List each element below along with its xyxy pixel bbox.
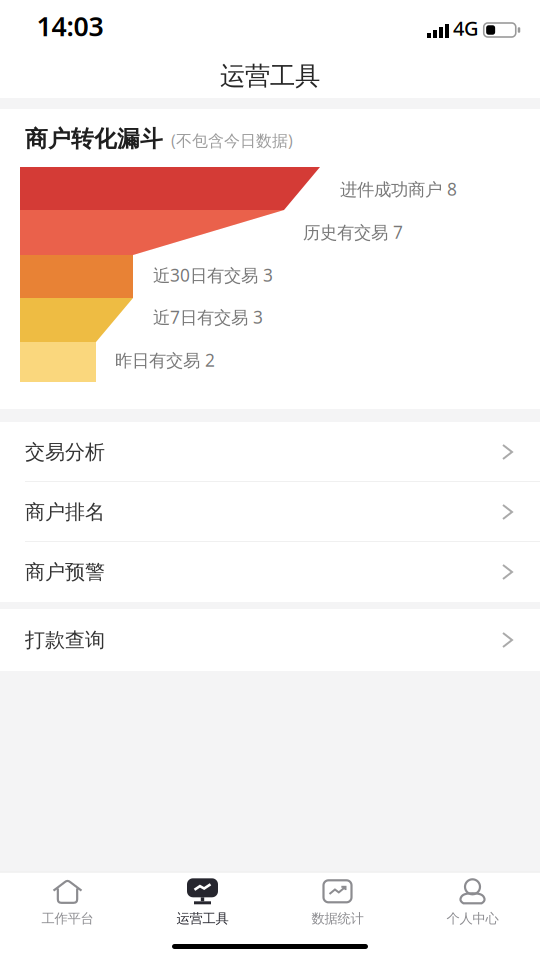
staticText: 近7日有交易 3 xyxy=(153,305,263,328)
button[interactable]: 运营工具 xyxy=(135,872,270,932)
staticText: 数据统计 xyxy=(311,910,363,927)
staticText: 14:03 xyxy=(36,8,103,44)
button[interactable]: 商户预警 xyxy=(0,542,540,602)
staticText: 个人中心 xyxy=(446,910,498,927)
staticText: 商户转化漏斗 xyxy=(25,125,163,153)
button[interactable]: 数据统计 xyxy=(270,872,405,932)
staticText: 历史有交易 7 xyxy=(303,220,403,243)
staticText: 4G xyxy=(453,15,479,41)
button[interactable]: 商户排名 xyxy=(0,482,540,542)
button[interactable]: 工作平台 xyxy=(0,872,135,932)
staticText: 工作平台 xyxy=(41,910,93,927)
button[interactable]: 个人中心 xyxy=(405,872,540,932)
staticText: (不包含今日数据) xyxy=(171,130,293,151)
staticText: 运营工具 xyxy=(176,910,228,927)
button[interactable]: 交易分析 xyxy=(0,422,540,482)
staticText: 运营工具 xyxy=(220,60,320,91)
staticText: 近30日有交易 3 xyxy=(153,263,273,286)
staticText: 商户预警 xyxy=(25,560,105,584)
staticText: 交易分析 xyxy=(25,440,105,464)
button[interactable]: 打款查询 xyxy=(0,610,540,670)
staticText: 打款查询 xyxy=(25,628,105,652)
staticText: 进件成功商户 8 xyxy=(340,177,457,200)
staticText: 昨日有交易 2 xyxy=(115,348,215,371)
staticText: 商户排名 xyxy=(25,500,105,524)
